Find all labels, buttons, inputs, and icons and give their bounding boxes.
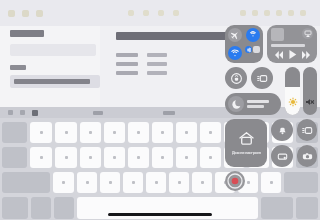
- button[interactable]: Screen mirroring: [297, 119, 317, 141]
- button[interactable]: Airplane mode: [228, 28, 242, 42]
- button[interactable]: Wallet: [271, 145, 293, 167]
- button[interactable]: Wi-Fi: [228, 46, 242, 60]
- button[interactable]: Дом не настроен: [225, 119, 267, 167]
- button[interactable]: AirPlay: [302, 28, 313, 39]
- button[interactable]: Brightness: [285, 67, 300, 115]
- button[interactable]: Screen mirroring: [251, 67, 273, 89]
- button[interactable]: AirPlay: [267, 25, 317, 63]
- button[interactable]: Camera: [297, 145, 317, 167]
- button[interactable]: Bluetooth: [245, 46, 252, 53]
- button[interactable]: Rotation lock: [225, 67, 247, 89]
- button[interactable]: Screen recording: [225, 171, 245, 191]
- button[interactable]: Play: [287, 49, 298, 60]
- button[interactable]: Timer: [271, 119, 293, 141]
- button[interactable]: Next: [301, 50, 310, 59]
- staticText: Дом не настроен: [232, 150, 261, 155]
- button[interactable]: Airplane mode: [225, 25, 263, 63]
- button[interactable]: Volume: [303, 67, 317, 115]
- button[interactable]: AirDrop: [246, 28, 260, 42]
- button[interactable]: Cellular: [253, 46, 260, 53]
- button[interactable]: [225, 93, 281, 115]
- button[interactable]: Previous: [274, 50, 283, 59]
